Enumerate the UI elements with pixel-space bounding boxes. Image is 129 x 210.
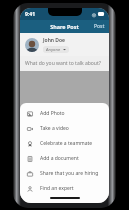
staticText: 9:41 (25, 11, 35, 18)
staticText: Take a video (40, 125, 69, 132)
staticText: Share that you are hiring (40, 170, 99, 177)
button[interactable]: Find an expert (20, 181, 109, 196)
button[interactable]: Anyone (43, 46, 69, 53)
button[interactable]: Add a document (20, 151, 109, 166)
staticText: Add Photo (40, 110, 65, 117)
staticText: What do you want to talk about? (25, 60, 101, 67)
staticText: Find an expert (40, 185, 74, 192)
button[interactable]: Share that you are hiring (20, 166, 109, 181)
staticText: Celebrate a teammate (40, 140, 93, 147)
button[interactable]: Add Photo (20, 106, 109, 121)
staticText: Anyone (46, 47, 61, 52)
staticText: Post (94, 23, 105, 30)
button[interactable]: Take a video (20, 121, 109, 136)
staticText: John Doe (43, 37, 65, 44)
staticText: Share Post (50, 23, 79, 30)
button[interactable]: Profile photo (25, 38, 39, 52)
button[interactable]: Celebrate a teammate (20, 136, 109, 151)
button[interactable]: Post (90, 20, 109, 33)
staticText: Add a document (40, 155, 79, 162)
